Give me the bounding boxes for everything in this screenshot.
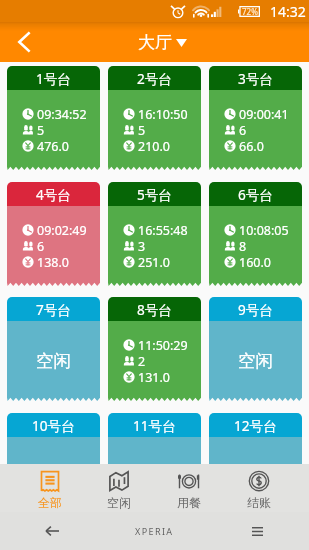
- button[interactable]: 4号台: [7, 182, 100, 286]
- staticText: 476.0: [37, 138, 69, 154]
- staticText: 大厅: [138, 32, 172, 53]
- button[interactable]: 10号台: [7, 413, 100, 464]
- staticText: 9号台: [238, 300, 273, 319]
- button[interactable]: 7号台: [7, 297, 100, 401]
- staticText: 1号台: [36, 69, 71, 88]
- staticText: 72%: [242, 6, 258, 17]
- button[interactable]: Menu: [206, 512, 309, 550]
- staticText: 8: [239, 238, 247, 254]
- staticText: 8号台: [137, 300, 172, 319]
- staticText: 3号台: [238, 69, 273, 88]
- staticText: 空闲: [107, 495, 131, 510]
- staticText: 5: [37, 122, 45, 138]
- button[interactable]: XPERIA: [103, 512, 206, 550]
- staticText: 09:34:52: [37, 106, 87, 122]
- staticText: 结账: [247, 495, 271, 510]
- button[interactable]: 9号台: [209, 297, 302, 401]
- staticText: 16:55:48: [138, 222, 188, 238]
- staticText: 6号台: [238, 185, 273, 204]
- staticText: XPERIA: [135, 525, 174, 537]
- staticText: 251.0: [138, 254, 170, 270]
- staticText: 16:10:50: [138, 106, 188, 122]
- button[interactable]: 12号台: [209, 413, 302, 464]
- staticText: 11号台: [133, 416, 176, 435]
- staticText: 09:00:41: [239, 106, 289, 122]
- staticText: 10:08:05: [239, 222, 289, 238]
- staticText: 5: [138, 122, 146, 138]
- staticText: 12号台: [234, 416, 277, 435]
- staticText: 14:32: [270, 2, 306, 21]
- staticText: 3: [138, 238, 146, 254]
- button[interactable]: 11号台: [108, 413, 201, 464]
- staticText: 6: [37, 238, 45, 254]
- button[interactable]: 2号台: [108, 66, 201, 170]
- staticText: 空闲: [36, 350, 72, 372]
- staticText: 210.0: [138, 138, 170, 154]
- staticText: 5号台: [137, 185, 172, 204]
- button[interactable]: 全部: [15, 464, 84, 512]
- staticText: 09:02:49: [37, 222, 87, 238]
- button[interactable]: 8号台: [108, 297, 201, 401]
- button[interactable]: 1号台: [7, 66, 100, 170]
- staticText: 全部: [38, 495, 62, 510]
- staticText: 6: [239, 122, 247, 138]
- button[interactable]: Back: [2, 22, 46, 62]
- button[interactable]: 大厅: [138, 32, 187, 53]
- staticText: 2: [138, 353, 146, 369]
- staticText: 138.0: [37, 254, 69, 270]
- button[interactable]: 用餐: [154, 464, 224, 512]
- staticText: 2号台: [137, 69, 172, 88]
- staticText: 131.0: [138, 369, 170, 385]
- button[interactable]: Back: [0, 512, 103, 550]
- button[interactable]: 5号台: [108, 182, 201, 286]
- staticText: 用餐: [177, 495, 201, 510]
- button[interactable]: 3号台: [209, 66, 302, 170]
- staticText: 10号台: [32, 416, 75, 435]
- button[interactable]: 结账: [224, 464, 294, 512]
- staticText: 11:50:29: [138, 337, 188, 353]
- staticText: 66.0: [239, 138, 264, 154]
- staticText: 7号台: [36, 300, 71, 319]
- button[interactable]: 空闲: [84, 464, 154, 512]
- button[interactable]: 6号台: [209, 182, 302, 286]
- staticText: 160.0: [239, 254, 271, 270]
- staticText: 空闲: [238, 350, 274, 372]
- staticText: 4号台: [36, 185, 71, 204]
